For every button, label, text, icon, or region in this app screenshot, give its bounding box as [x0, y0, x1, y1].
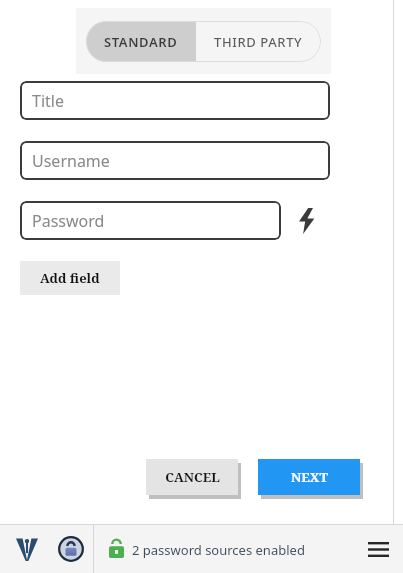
button[interactable]: Menu	[363, 535, 393, 563]
button[interactable]: Vault	[12, 534, 42, 564]
button[interactable]: NEXT	[258, 459, 360, 495]
staticText: Title	[32, 90, 64, 112]
staticText: STANDARD	[104, 33, 178, 51]
staticText: CANCEL	[165, 468, 220, 486]
button[interactable]: THIRD PARTY	[196, 21, 321, 62]
button[interactable]: STANDARD	[86, 21, 196, 62]
staticText: Add field	[40, 269, 100, 287]
staticText: Password	[32, 210, 105, 232]
staticText: NEXT	[291, 468, 328, 486]
button[interactable]: CANCEL	[146, 459, 238, 495]
staticText: THIRD PARTY	[214, 33, 303, 51]
button[interactable]: Lock vault	[56, 534, 86, 564]
button[interactable]: Password	[20, 201, 281, 240]
button[interactable]: Generate password	[291, 204, 321, 238]
button[interactable]: Title	[20, 81, 330, 120]
staticText: Username	[32, 150, 110, 172]
button[interactable]: Add field	[20, 261, 120, 295]
button[interactable]: Username	[20, 141, 330, 180]
staticText: 2 password sources enabled	[132, 541, 305, 559]
